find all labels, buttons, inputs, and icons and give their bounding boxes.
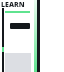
- staticText: LEARN: [1, 0, 25, 10]
